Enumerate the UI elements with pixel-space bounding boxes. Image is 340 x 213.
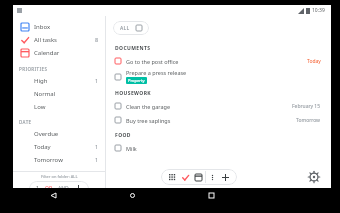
button[interactable]: Home: [126, 189, 138, 201]
staticText: FOOD: [115, 132, 131, 139]
staticText: High: [34, 77, 48, 85]
staticText: AND: [58, 185, 69, 192]
staticText: Milk: [126, 145, 137, 152]
staticText: DOCUMENTS: [115, 45, 151, 52]
staticText: 1: [95, 156, 99, 163]
other: Add filter: [75, 185, 82, 192]
staticText: PRIORITIES: [19, 66, 48, 72]
staticText: Buy tree saplings: [126, 117, 171, 124]
staticText: Overdue: [34, 130, 59, 138]
staticText: Today: [34, 143, 51, 151]
button[interactable]: Go to the post office: [106, 54, 331, 68]
staticText: Property: [128, 78, 145, 83]
staticText: 1: [95, 77, 99, 84]
button[interactable]: Clean the garage: [106, 99, 331, 113]
staticText: 10:39: [312, 7, 325, 14]
button[interactable]: Prepare a press release: [106, 68, 331, 85]
staticText: Tomorrow: [296, 117, 321, 124]
staticText: All tasks: [34, 36, 57, 44]
staticText: Calendar: [34, 49, 60, 57]
staticText: HOUSEWORK: [115, 90, 152, 97]
button[interactable]: More options: [206, 171, 219, 184]
staticText: Low: [34, 103, 46, 111]
button[interactable]: Grid view: [166, 171, 179, 184]
button[interactable]: Buy tree saplings: [106, 113, 331, 127]
staticText: Inbox: [34, 23, 51, 31]
button[interactable]: Today: [13, 140, 105, 153]
button[interactable]: All tasks: [179, 171, 192, 184]
staticText: 1: [36, 185, 39, 192]
button[interactable]: Milk: [106, 141, 331, 155]
button[interactable]: Normal: [13, 87, 105, 100]
button[interactable]: ALL: [113, 21, 149, 35]
staticText: OR: [45, 185, 53, 192]
button[interactable]: Recents: [205, 189, 217, 201]
button[interactable]: Calendar: [192, 171, 205, 184]
staticText: Filter on folder: ALL: [41, 174, 78, 179]
button[interactable]: Tomorrow: [13, 153, 105, 166]
staticText: Prepare a press release: [126, 69, 187, 76]
staticText: Tomorrow: [34, 156, 63, 164]
staticText: 8: [95, 36, 99, 43]
staticText: 1: [95, 143, 99, 150]
staticText: February 15: [292, 103, 321, 110]
button[interactable]: Back: [47, 189, 59, 201]
button[interactable]: Overdue: [13, 127, 105, 140]
staticText: Today: [307, 58, 321, 65]
staticText: Clean the garage: [126, 103, 171, 110]
staticText: ALL: [120, 25, 130, 32]
button[interactable]: All tasks: [13, 33, 105, 46]
staticText: DATE: [19, 119, 32, 125]
button[interactable]: 1: [29, 181, 89, 196]
staticText: Go to the post office: [126, 58, 179, 65]
button[interactable]: High: [13, 74, 105, 87]
button[interactable]: Inbox: [13, 20, 105, 33]
button[interactable]: Settings: [308, 171, 320, 183]
staticText: Normal: [34, 90, 56, 98]
button[interactable]: Calendar: [13, 46, 105, 59]
button[interactable]: Low: [13, 100, 105, 113]
button[interactable]: Add task: [219, 171, 232, 184]
